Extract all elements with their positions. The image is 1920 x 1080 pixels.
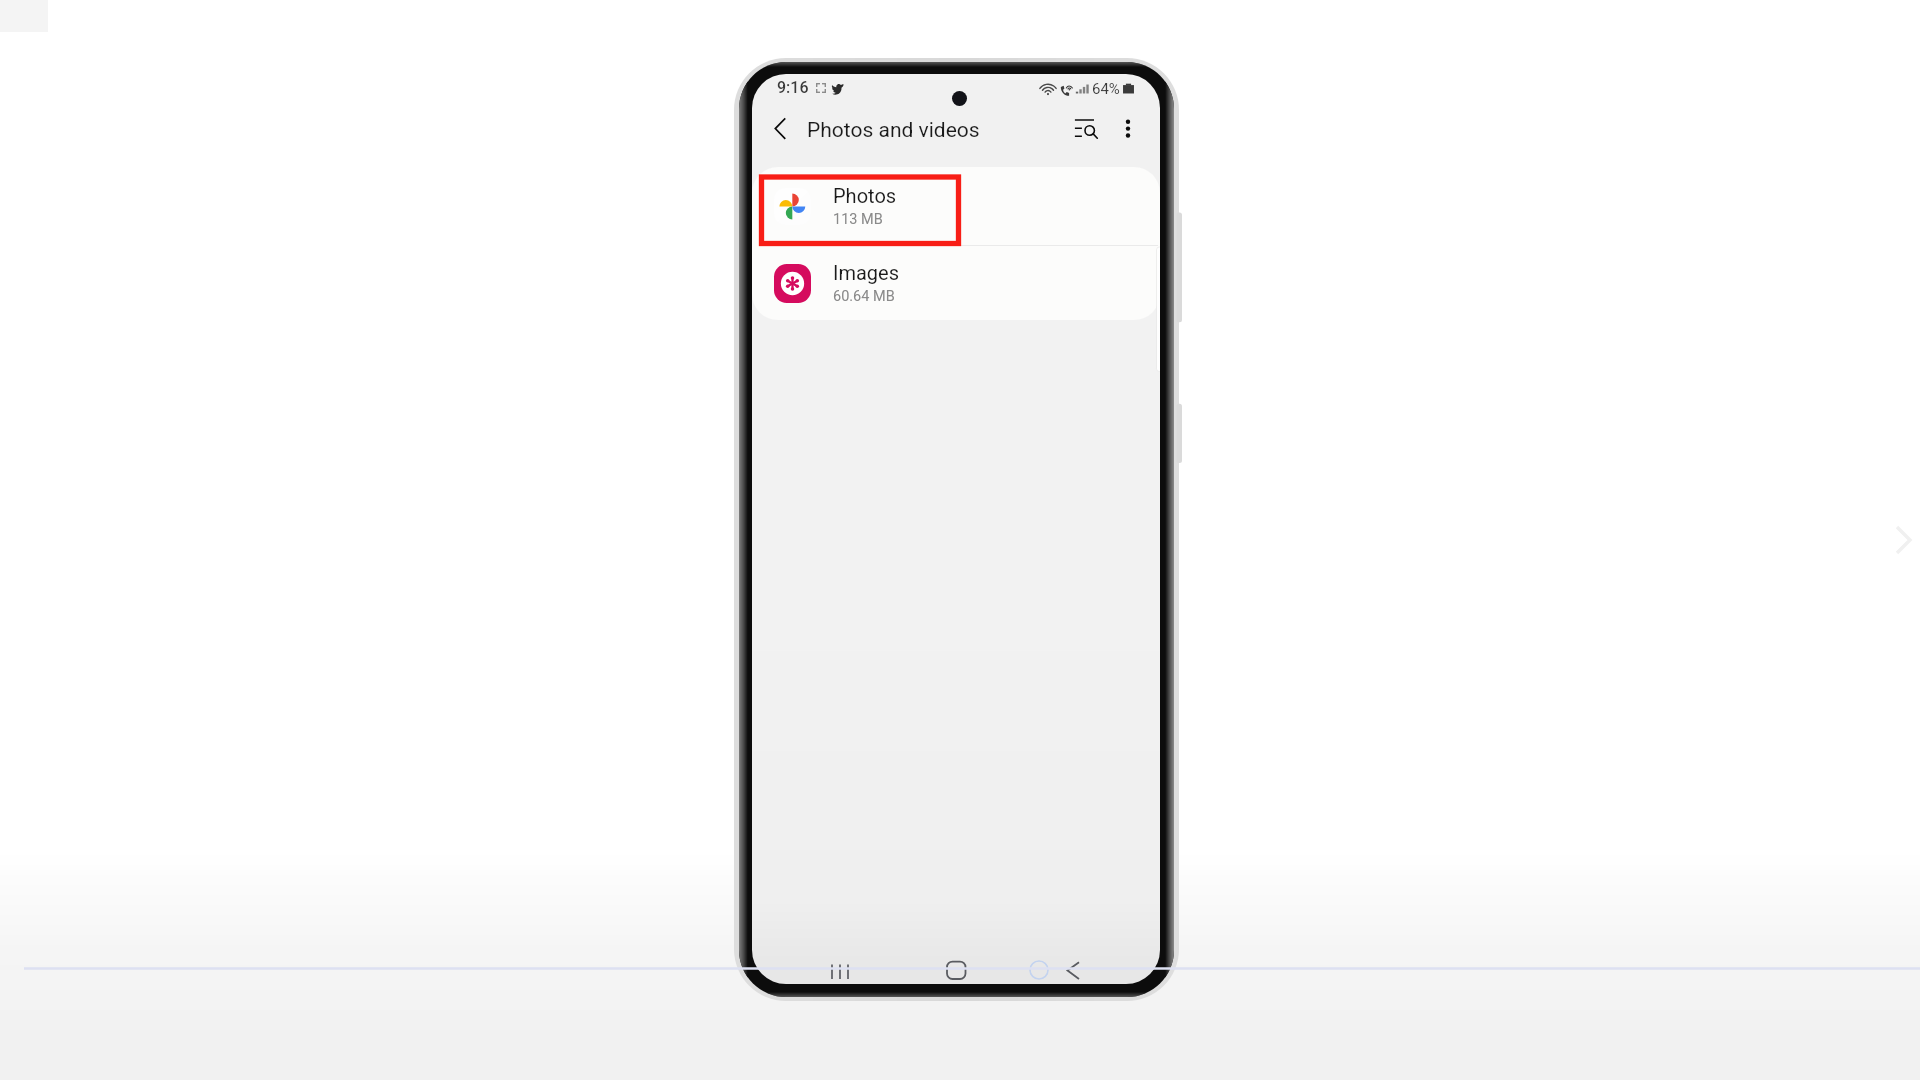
button[interactable]: Photos: [752, 167, 1160, 245]
button[interactable]: Home: [938, 954, 974, 984]
button[interactable]: Images: [752, 246, 1160, 320]
staticText: Photos and videos: [807, 118, 980, 143]
staticText: 113 MB: [833, 211, 883, 228]
button[interactable]: Back: [1055, 954, 1091, 984]
staticText: 9:16: [777, 78, 809, 97]
button[interactable]: Recents: [822, 954, 858, 984]
button[interactable]: Navigate up: [762, 110, 806, 154]
staticText: Images: [833, 261, 900, 284]
button[interactable]: Search: [1064, 107, 1108, 151]
button[interactable]: More options: [1108, 107, 1148, 147]
staticText: 64%: [1092, 80, 1120, 98]
staticText: 60.64 MB: [833, 288, 895, 305]
staticText: Photos: [833, 184, 897, 207]
